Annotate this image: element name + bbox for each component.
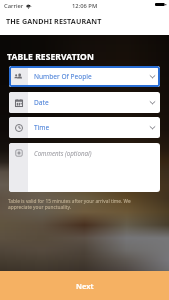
- staticText: TABLE RESERVATION: [7, 51, 94, 63]
- staticText: Comments (optional): [34, 149, 92, 157]
- staticText: 12:06 PM: [72, 2, 98, 10]
- button[interactable]: Next: [0, 271, 169, 300]
- staticText: Next: [76, 281, 94, 291]
- staticText: Number Of People: [34, 72, 92, 81]
- button[interactable]: Date: [9, 92, 160, 113]
- button[interactable]: Number Of People: [9, 66, 160, 87]
- button[interactable]: Comments (optional): [9, 143, 160, 192]
- staticText: Date: [34, 98, 49, 107]
- staticText: Carrier: [4, 2, 24, 10]
- staticText: THE GANDHI RESTAURANT: [6, 16, 102, 26]
- button[interactable]: Time: [9, 117, 160, 138]
- staticText: Table is valid for 15 minutes after your…: [8, 198, 155, 210]
- staticText: Time: [34, 123, 50, 132]
